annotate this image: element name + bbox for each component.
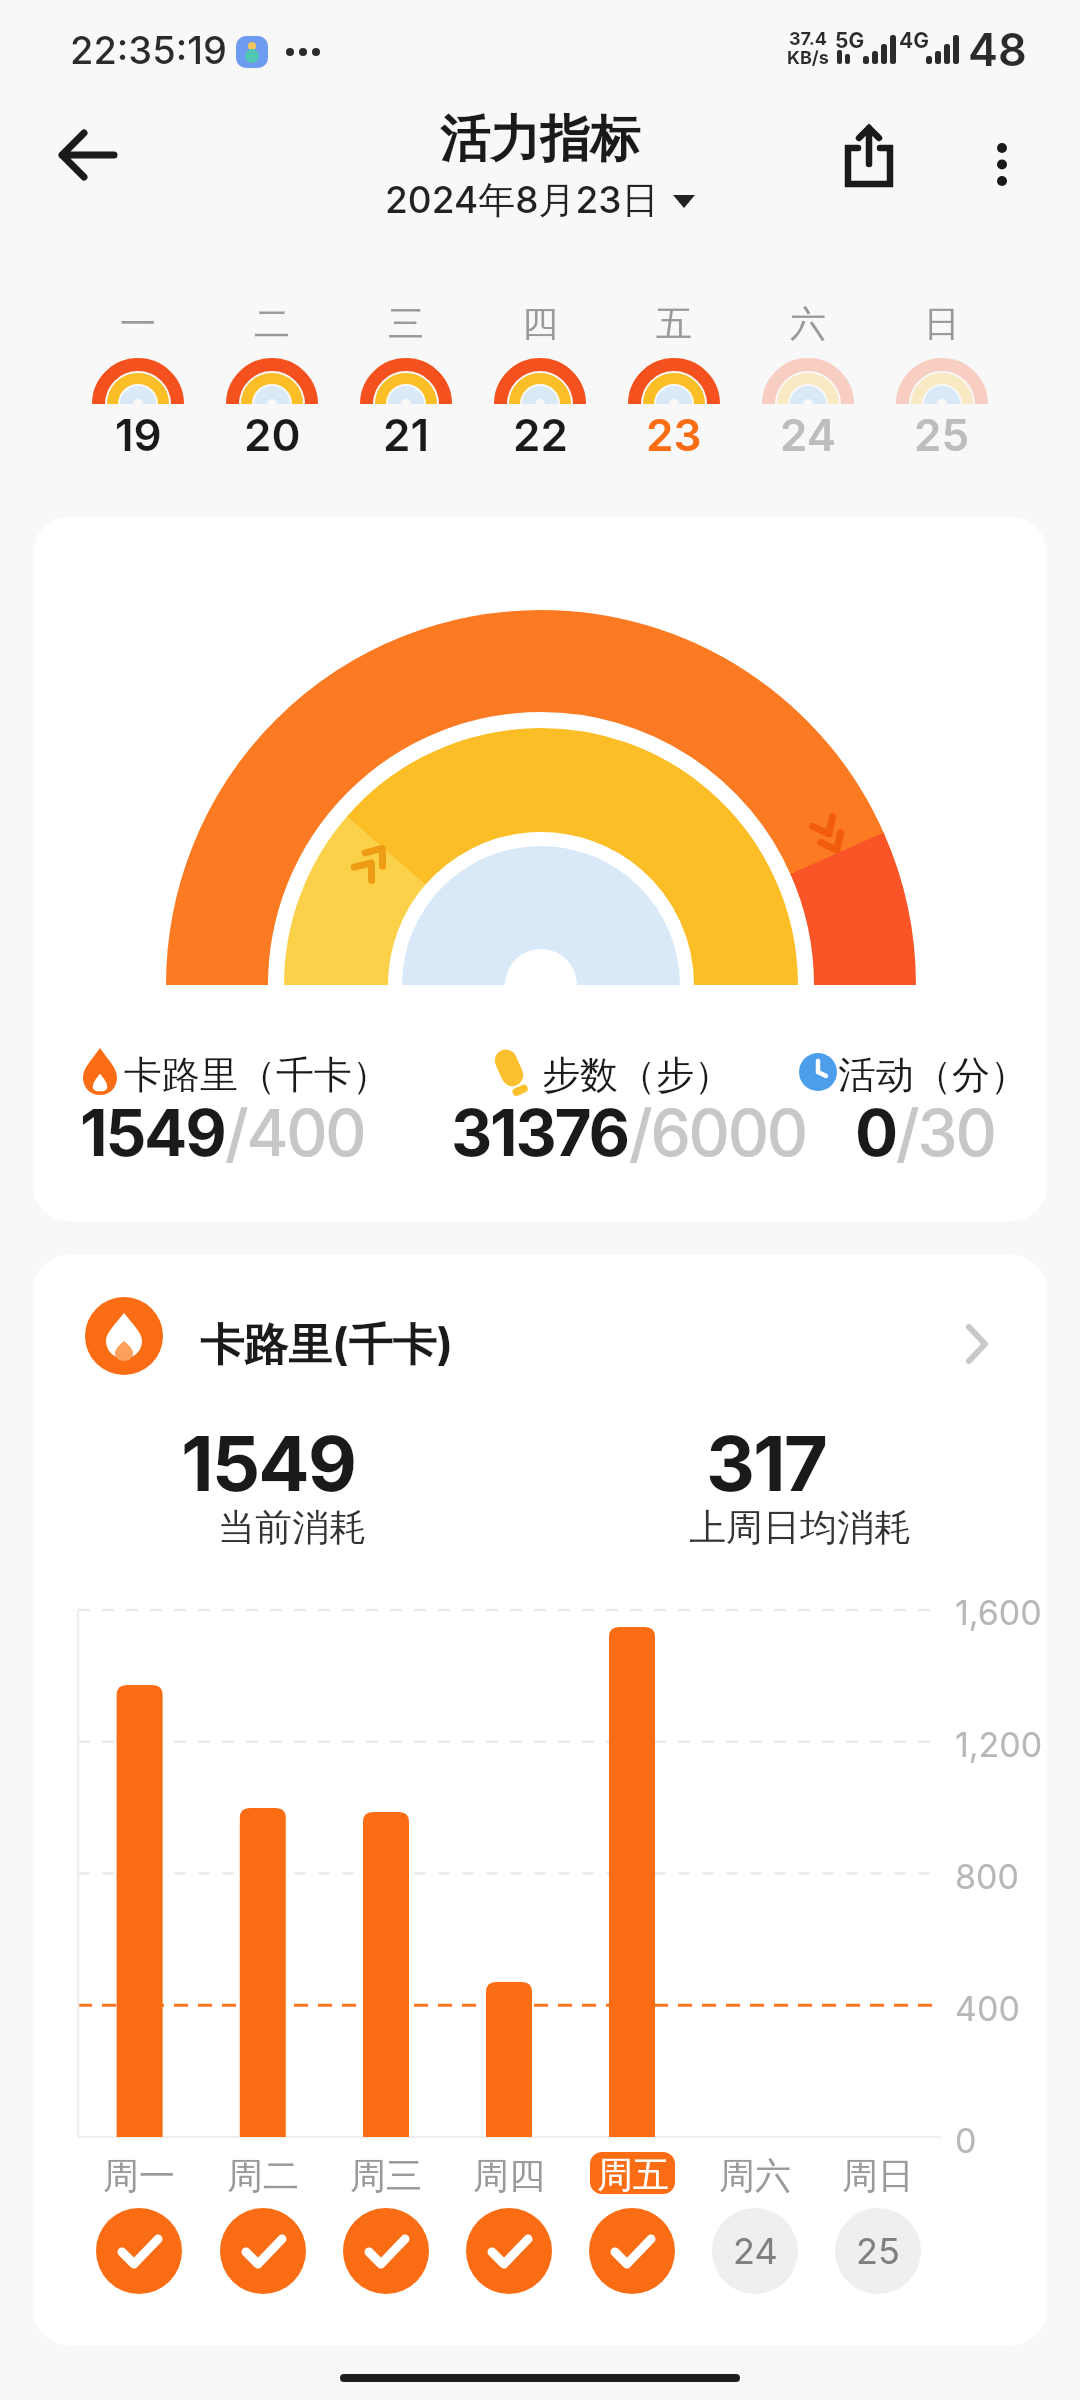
staticText: 800 [955,1856,1019,1897]
staticText: 24 [733,2229,778,2273]
button[interactable]: 卡路里（千卡） [33,517,1047,1221]
staticText: 周六 [719,2153,791,2198]
staticText: 0 [955,2120,977,2161]
staticText: 周三 [350,2153,422,2198]
staticText: 1,600 [955,1592,1042,1633]
staticText: 20 [244,408,301,461]
button[interactable] [99,2209,179,2289]
staticText: 317 [706,1417,827,1509]
staticText: 37.4 [789,28,828,50]
button[interactable] [346,295,466,475]
staticText: 周五 [597,2152,669,2194]
button[interactable] [882,295,1002,475]
staticText: 周二 [227,2153,299,2198]
staticText: 周四 [473,2153,545,2198]
button[interactable]: 2024年8月23日 [340,172,740,228]
staticText: 卡路里(千卡) [200,1317,454,1373]
staticText: /6000 [629,1094,806,1171]
staticText: 上周日均消耗 [689,1504,911,1551]
staticText: /400 [225,1094,365,1171]
staticText: 22 [513,408,568,461]
staticText: 24 [780,408,837,461]
staticText: 31376 [452,1094,629,1171]
staticText: 23 [646,408,702,461]
staticText: 2024年8月23日 [385,177,659,224]
button[interactable] [78,295,198,475]
staticText: 48 [968,22,1027,76]
staticText: 400 [955,1988,1020,2029]
staticText: 21 [383,408,430,461]
staticText: 日 [924,301,960,346]
button[interactable]: 周五 [590,2152,675,2194]
staticText: 4G [899,28,929,53]
staticText: 当前消耗 [218,1504,366,1551]
staticText: 步数（步） [542,1051,732,1099]
button[interactable] [966,122,1038,198]
button[interactable] [614,295,734,475]
button[interactable] [748,295,868,475]
staticText: 四 [522,301,558,346]
staticText: 周一 [103,2153,175,2198]
button[interactable] [838,2209,918,2289]
button[interactable] [33,1275,1047,1415]
staticText: 1549 [181,1417,356,1509]
staticText: 25 [914,408,970,461]
staticText: 五 [656,301,692,346]
button[interactable] [223,2209,303,2289]
staticText: 1549 [80,1094,225,1171]
staticText: 一 [120,301,156,346]
staticText: 1,200 [955,1724,1043,1765]
staticText: 卡路里（千卡） [124,1051,390,1099]
button[interactable] [832,122,908,198]
staticText: 六 [790,301,826,346]
button[interactable] [592,2209,672,2289]
staticText: 19 [115,408,162,461]
staticText: 二 [254,301,290,346]
button[interactable] [48,119,128,191]
staticText: 三 [388,301,424,346]
staticText: KB/s [787,47,829,69]
button[interactable] [480,295,600,475]
button[interactable] [469,2209,549,2289]
staticText: 22:35:19 [70,27,227,73]
button[interactable] [715,2209,795,2289]
staticText: 25 [856,2229,900,2273]
staticText: 活力指标 [440,108,640,171]
staticText: 周日 [842,2153,914,2198]
staticText: /30 [896,1094,995,1171]
staticText: 5G [835,28,865,53]
staticText: 0 [855,1094,896,1171]
button[interactable] [346,2209,426,2289]
staticText: 活动（分） [838,1051,1028,1099]
button[interactable] [212,295,332,475]
